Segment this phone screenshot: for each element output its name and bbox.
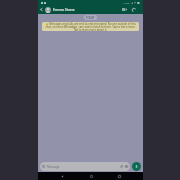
staticText: 14:08	[123, 1, 130, 4]
button[interactable]: Message	[40, 162, 130, 171]
button[interactable]: Voice call	[129, 5, 139, 14]
button[interactable]: Record voice message	[132, 162, 141, 171]
button[interactable]: Recent apps	[115, 172, 123, 180]
button[interactable]: Back	[58, 172, 66, 180]
button[interactable]: Home	[87, 172, 95, 180]
button[interactable]: 🔒 Messages and calls are end-to-end encr…	[42, 22, 139, 31]
staticText: 🔒 Messages and calls are end-to-end encr…	[44, 22, 137, 31]
staticText: TODAY	[86, 16, 95, 20]
button[interactable]: Back	[39, 7, 44, 12]
staticText: Message	[47, 165, 60, 169]
button[interactable]: Video call	[119, 5, 129, 14]
button[interactable]: Profile photo	[45, 7, 51, 13]
staticText: Emma Stone	[53, 7, 75, 12]
